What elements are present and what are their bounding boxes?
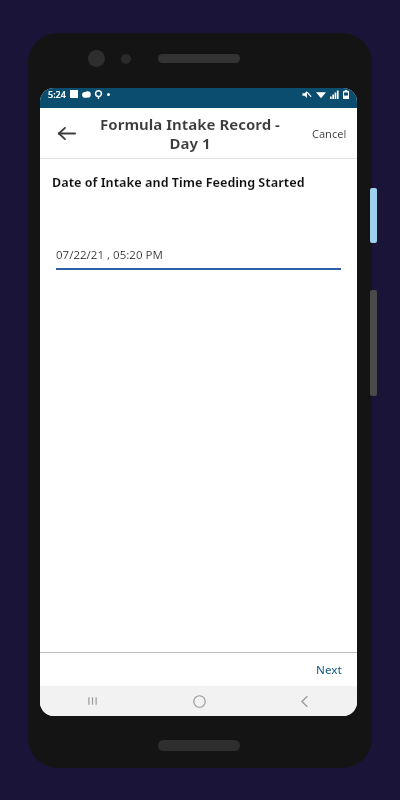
button[interactable]: Recent apps xyxy=(71,686,115,716)
staticText: Formula Intake Record - Day 1 xyxy=(90,114,290,153)
staticText: 5:24 xyxy=(48,88,66,100)
staticText: 07/22/21 , 05:20 PM xyxy=(56,247,163,263)
button[interactable]: Cancel xyxy=(302,118,357,149)
button[interactable]: 07/22/21 , 05:20 PM xyxy=(56,247,341,270)
staticText: Date of Intake and Time Feeding Started xyxy=(52,174,305,191)
button[interactable]: Home xyxy=(177,686,221,716)
staticText: Cancel xyxy=(312,126,347,141)
staticText: Next xyxy=(316,662,342,678)
button[interactable]: Back xyxy=(282,686,326,716)
button[interactable]: Next xyxy=(306,656,352,684)
button[interactable]: Back xyxy=(48,115,84,151)
